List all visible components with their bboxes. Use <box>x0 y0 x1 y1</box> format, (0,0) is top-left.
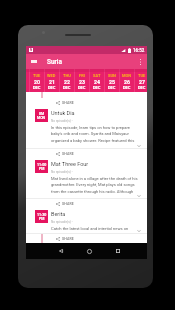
staticText: DEC <box>138 85 146 90</box>
staticText: MON <box>37 116 46 120</box>
staticText: 11:30 <box>37 213 47 217</box>
staticText: DEC <box>33 85 41 90</box>
button[interactable]: SHARE <box>56 201 74 206</box>
button[interactable]: TUE <box>134 69 149 92</box>
staticText: No episode(s) - <box>51 119 73 123</box>
staticText: 27 <box>139 79 145 85</box>
staticText: No episode(s) - <box>51 220 73 224</box>
staticText: No episode(s) - <box>51 170 73 174</box>
staticText: PM <box>39 217 45 221</box>
button[interactable]: TUE <box>29 69 44 92</box>
button[interactable]: THU <box>59 69 74 92</box>
button[interactable]: MON <box>119 69 134 92</box>
staticText: 24 <box>94 79 100 85</box>
staticText: N <box>30 48 33 52</box>
button[interactable]: FRI <box>74 69 89 92</box>
staticText: 22 <box>64 79 70 85</box>
staticText: SHARE <box>62 152 74 156</box>
button[interactable]: SAT <box>89 69 104 92</box>
staticText: 11:00 <box>37 163 47 167</box>
staticText: 23 <box>79 79 85 85</box>
button[interactable]: 11:30 <box>35 210 48 223</box>
button[interactable]: Back <box>55 243 67 259</box>
staticText: 20 <box>34 79 40 85</box>
staticText: 8M <box>39 112 45 116</box>
staticText: DEC <box>63 85 71 90</box>
button[interactable]: Expand <box>136 193 142 199</box>
staticText: DEC <box>93 85 101 90</box>
staticText: DEC <box>108 85 116 90</box>
staticText: THU <box>63 73 71 78</box>
staticText: Mat Three Four <box>51 161 89 167</box>
staticText: Mat lived alone in a village after the d… <box>51 176 138 194</box>
staticText: 25 <box>109 79 115 85</box>
button[interactable]: Expand <box>136 143 142 149</box>
button[interactable]: Home <box>83 243 95 259</box>
button[interactable]: 11:00 <box>35 160 48 173</box>
button[interactable]: WED <box>44 69 59 92</box>
staticText: Untuk Dia <box>51 110 75 116</box>
staticText: Berita <box>51 211 66 217</box>
staticText: TUE <box>138 73 146 78</box>
staticText: DEC <box>48 85 56 90</box>
staticText: SAT <box>93 73 101 78</box>
button[interactable]: Expand <box>136 228 142 234</box>
staticText: SHARE <box>62 101 74 105</box>
staticText: SHARE <box>62 237 74 241</box>
staticText: SUN <box>108 73 116 78</box>
staticText: SHARE <box>62 202 74 206</box>
staticText: DEC <box>78 85 86 90</box>
staticText: MON <box>122 73 132 78</box>
button[interactable]: SHARE <box>56 100 74 105</box>
staticText: 26 <box>124 79 130 85</box>
staticText: DEC <box>123 85 131 90</box>
button[interactable]: More options <box>134 54 147 69</box>
button[interactable]: SHARE <box>56 236 74 241</box>
staticText: Suria <box>47 58 63 66</box>
staticText: 21 <box>49 79 55 85</box>
staticText: PM <box>39 167 45 171</box>
staticText: In this episode, learn tips on how to pr… <box>51 125 138 143</box>
button[interactable]: Open navigation menu <box>27 54 40 69</box>
staticText: WED <box>47 73 56 78</box>
button[interactable]: SUN <box>104 69 119 92</box>
button[interactable]: Recent apps <box>112 243 124 259</box>
staticText: TUE <box>33 73 41 78</box>
button[interactable]: SHARE <box>56 151 74 156</box>
button[interactable]: 8M <box>35 109 48 122</box>
staticText: Catch the latest local and intertiol new… <box>51 226 138 231</box>
staticText: 16:52 <box>133 48 145 53</box>
staticText: FRI <box>79 73 85 78</box>
